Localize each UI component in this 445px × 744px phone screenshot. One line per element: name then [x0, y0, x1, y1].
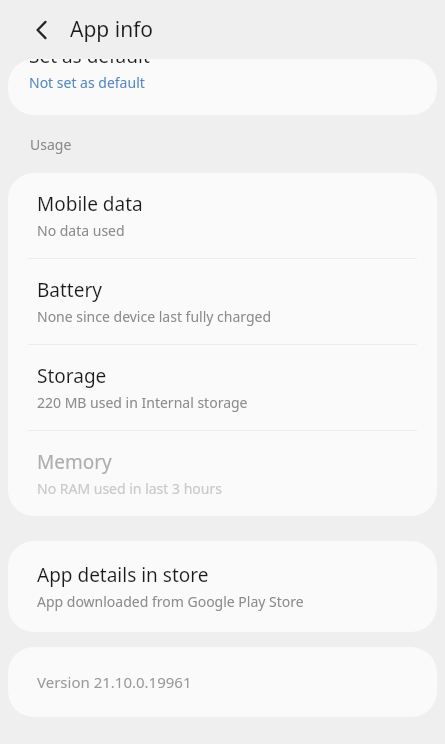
staticText: No RAM used in last 3 hours [37, 479, 222, 498]
staticText: Not set as default [29, 73, 145, 92]
button[interactable]: Back [20, 8, 64, 52]
button[interactable]: Set as default [8, 59, 437, 92]
staticText: App downloaded from Google Play Store [37, 592, 304, 611]
staticText: None since device last fully charged [37, 307, 272, 326]
staticText: Version 21.10.0.19961 [37, 672, 192, 692]
button[interactable]: App details in store [8, 541, 437, 632]
button[interactable]: Version 21.10.0.19961 [8, 647, 437, 717]
staticText: App info [70, 15, 154, 44]
staticText: Battery [37, 277, 102, 303]
staticText: Memory [37, 449, 112, 475]
staticText: Storage [37, 363, 107, 389]
staticText: Set as default [29, 59, 150, 69]
button[interactable]: Battery [8, 259, 437, 344]
button[interactable]: Mobile data [8, 173, 437, 258]
button[interactable]: Storage [8, 345, 437, 430]
staticText: App details in store [37, 562, 209, 588]
staticText: Mobile data [37, 191, 143, 217]
staticText: No data used [37, 221, 125, 240]
button[interactable]: Memory [8, 431, 437, 516]
staticText: Usage [30, 135, 72, 154]
staticText: 220 MB used in Internal storage [37, 393, 248, 412]
